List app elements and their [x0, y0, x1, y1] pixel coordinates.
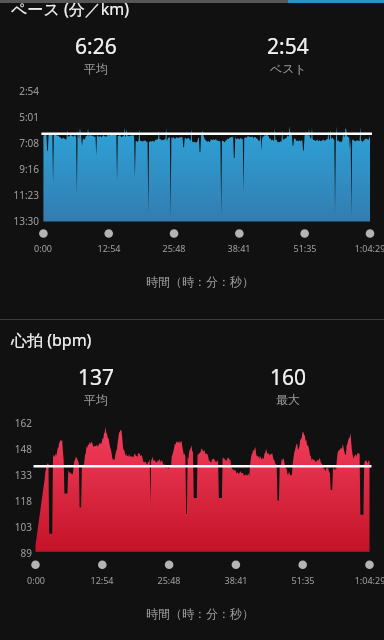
staticText: 162	[0, 416, 32, 430]
staticText: 160	[270, 363, 307, 392]
staticText: 38:41	[209, 242, 269, 254]
staticText: ベスト	[270, 61, 307, 76]
staticText: 12:54	[72, 574, 132, 586]
staticText: 2:54	[0, 84, 39, 98]
staticText: 13:30	[0, 214, 39, 228]
staticText: 0:00	[13, 242, 73, 254]
staticText: 平均	[84, 61, 108, 76]
staticText: 118	[0, 494, 32, 508]
staticText: 0:00	[6, 574, 66, 586]
staticText: 時間（時：分：秒）	[8, 606, 384, 621]
staticText: 148	[0, 442, 32, 456]
staticText: 103	[0, 520, 32, 534]
staticText: 9:16	[0, 162, 39, 176]
staticText: 5:01	[0, 110, 39, 124]
staticText: 25:48	[139, 574, 199, 586]
staticText: 1:04:29	[340, 242, 384, 254]
staticText: 89	[0, 546, 32, 560]
staticText: 7:08	[0, 136, 39, 150]
staticText: 心拍 (bpm)	[11, 329, 92, 351]
staticText: 1:04:29	[340, 574, 384, 586]
staticText: 51:35	[273, 574, 333, 586]
staticText: 51:35	[275, 242, 335, 254]
staticText: 6:26	[75, 32, 117, 61]
staticText: 137	[78, 363, 115, 392]
staticText: ペース (分／km)	[11, 0, 130, 20]
staticText: 38:41	[206, 574, 266, 586]
staticText: 25:48	[144, 242, 204, 254]
staticText: 平均	[84, 392, 108, 407]
staticText: 133	[0, 468, 32, 482]
staticText: 11:23	[0, 188, 39, 202]
staticText: 最大	[276, 392, 300, 407]
staticText: 時間（時：分：秒）	[8, 274, 384, 289]
staticText: 2:54	[267, 32, 309, 61]
staticText: 12:54	[79, 242, 139, 254]
